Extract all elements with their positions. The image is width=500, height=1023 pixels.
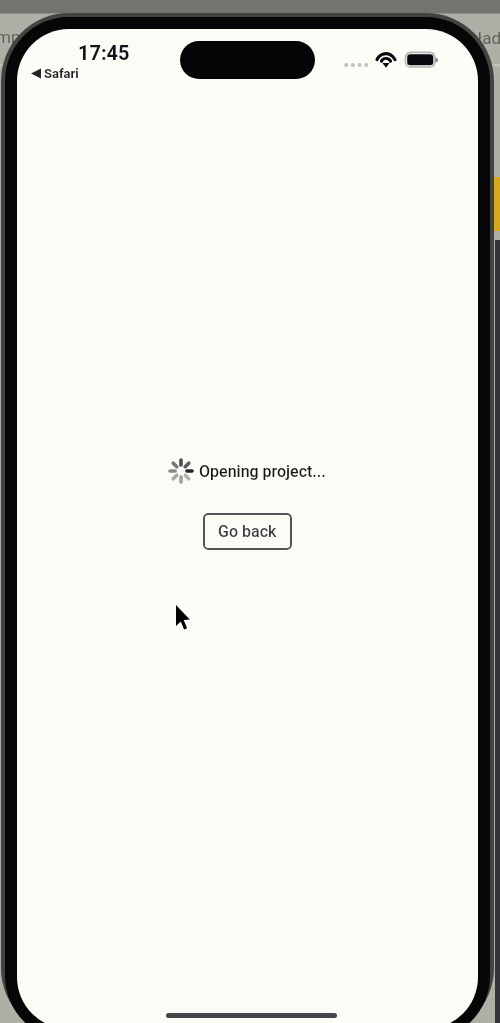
button[interactable]: Safari	[31, 66, 79, 81]
staticText: Go back	[218, 522, 277, 541]
button[interactable]: Go back	[203, 513, 292, 550]
staticText: mp	[0, 27, 21, 47]
staticText: kład	[469, 28, 500, 48]
staticText: 17:45	[78, 41, 130, 64]
staticText: Safari	[44, 66, 79, 81]
staticText: Opening project...	[199, 462, 326, 481]
